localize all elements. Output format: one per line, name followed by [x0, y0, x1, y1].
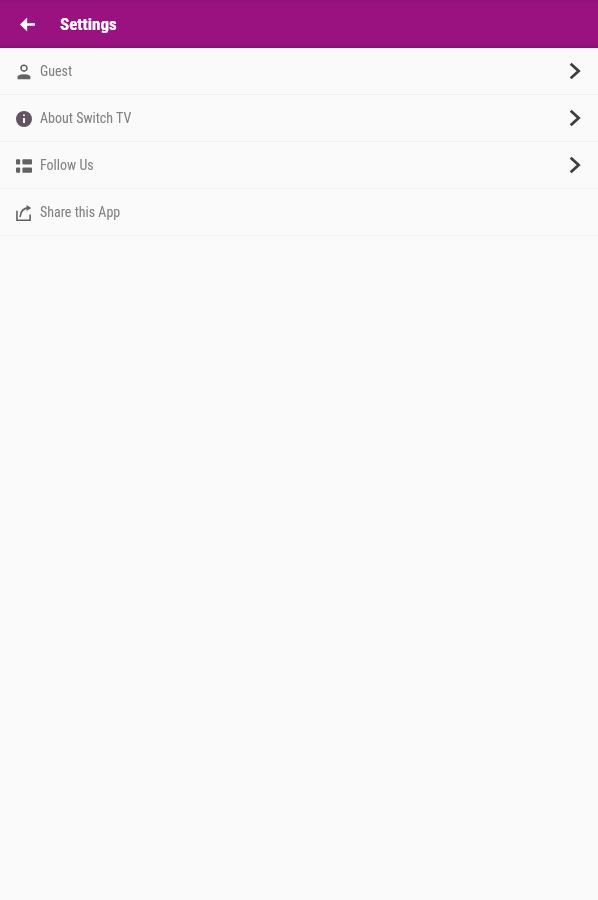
button[interactable]: Back [11, 8, 43, 40]
button[interactable]: Share this App [0, 189, 598, 235]
staticText: Share this App [40, 204, 121, 220]
button[interactable]: Follow Us [0, 142, 598, 188]
staticText: Guest [40, 63, 73, 79]
staticText: Settings [60, 14, 117, 34]
staticText: About Switch TV [40, 110, 132, 126]
staticText: Follow Us [40, 157, 94, 173]
button[interactable]: About Switch TV [0, 95, 598, 141]
button[interactable]: Guest [0, 48, 598, 94]
